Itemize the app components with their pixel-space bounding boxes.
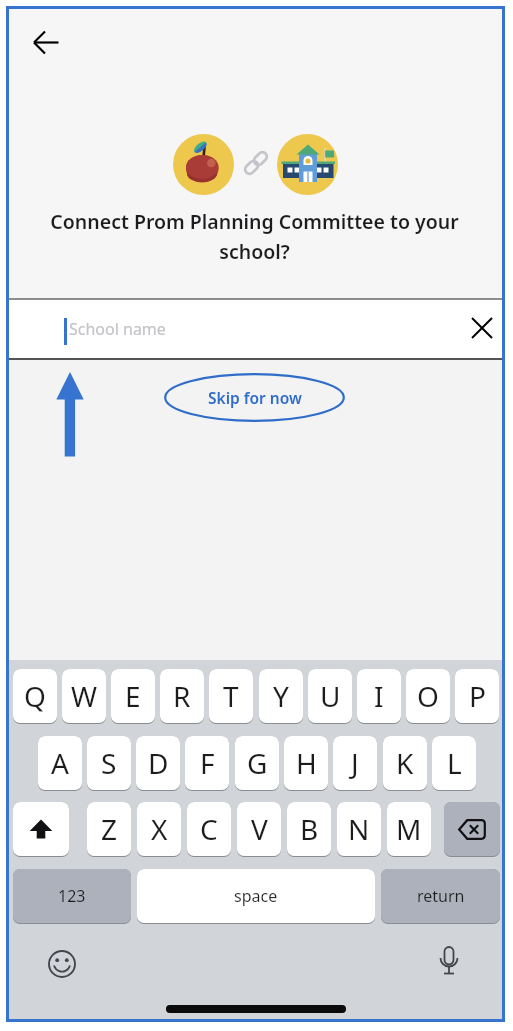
staticText: Y bbox=[273, 677, 289, 715]
staticText: Z bbox=[101, 810, 118, 848]
staticText: X bbox=[151, 810, 168, 848]
staticText: R bbox=[173, 677, 191, 715]
button[interactable]: return bbox=[381, 869, 500, 923]
button[interactable]: Q bbox=[13, 669, 57, 723]
button[interactable]: K bbox=[383, 736, 427, 790]
button[interactable]: space bbox=[137, 869, 375, 923]
staticText: F bbox=[200, 744, 215, 782]
button[interactable]: N bbox=[337, 802, 381, 856]
button[interactable]: D bbox=[136, 736, 180, 790]
staticText: U bbox=[320, 677, 341, 715]
staticText: A bbox=[51, 744, 69, 782]
button[interactable]: C bbox=[187, 802, 231, 856]
button[interactable]: H bbox=[284, 736, 328, 790]
button[interactable] bbox=[13, 802, 69, 856]
button[interactable]: X bbox=[137, 802, 181, 856]
staticText: B bbox=[300, 810, 319, 848]
staticText: space bbox=[234, 885, 278, 907]
staticText: M bbox=[396, 810, 422, 848]
staticText: E bbox=[125, 677, 141, 715]
button[interactable]: V bbox=[237, 802, 281, 856]
button[interactable]: Y bbox=[259, 669, 303, 723]
staticText: Q bbox=[24, 677, 46, 715]
button[interactable] bbox=[467, 313, 497, 343]
staticText: I bbox=[374, 677, 384, 715]
button[interactable] bbox=[27, 23, 65, 61]
button[interactable]: L bbox=[432, 736, 476, 790]
staticText: school? bbox=[219, 238, 290, 265]
staticText: K bbox=[396, 744, 414, 782]
button[interactable]: P bbox=[455, 669, 499, 723]
button[interactable]: J bbox=[333, 736, 377, 790]
button[interactable] bbox=[444, 802, 500, 856]
button[interactable] bbox=[437, 946, 461, 982]
staticText: N bbox=[348, 810, 370, 848]
staticText: School name bbox=[69, 318, 166, 340]
button[interactable]: Skip for now bbox=[164, 373, 345, 422]
staticText: V bbox=[251, 810, 268, 848]
staticText: 123 bbox=[58, 885, 86, 907]
button[interactable]: F bbox=[185, 736, 229, 790]
staticText: T bbox=[223, 677, 239, 715]
staticText: W bbox=[71, 677, 98, 715]
button[interactable]: B bbox=[287, 802, 331, 856]
staticText: L bbox=[447, 744, 462, 782]
staticText: S bbox=[101, 744, 117, 782]
staticText: C bbox=[200, 810, 218, 848]
staticText: return bbox=[417, 885, 465, 907]
button[interactable]: T bbox=[209, 669, 253, 723]
button[interactable]: Z bbox=[87, 802, 131, 856]
button[interactable]: M bbox=[387, 802, 431, 856]
button[interactable]: W bbox=[62, 669, 106, 723]
button[interactable]: S bbox=[87, 736, 131, 790]
button[interactable]: U bbox=[308, 669, 352, 723]
button[interactable]: R bbox=[160, 669, 204, 723]
staticText: O bbox=[417, 677, 439, 715]
staticText: Skip for now bbox=[208, 387, 302, 408]
staticText: J bbox=[351, 744, 359, 782]
button[interactable]: A bbox=[38, 736, 82, 790]
button[interactable] bbox=[9, 300, 502, 358]
staticText: H bbox=[296, 744, 317, 782]
button[interactable]: G bbox=[235, 736, 279, 790]
staticText: D bbox=[148, 744, 169, 782]
button[interactable] bbox=[48, 950, 76, 978]
staticText: P bbox=[469, 677, 486, 715]
staticText: Connect Prom Planning Committee to your bbox=[50, 208, 459, 235]
button[interactable]: 123 bbox=[13, 869, 131, 923]
button[interactable]: E bbox=[111, 669, 155, 723]
staticText: G bbox=[247, 744, 268, 782]
button[interactable]: I bbox=[357, 669, 401, 723]
button[interactable]: O bbox=[406, 669, 450, 723]
